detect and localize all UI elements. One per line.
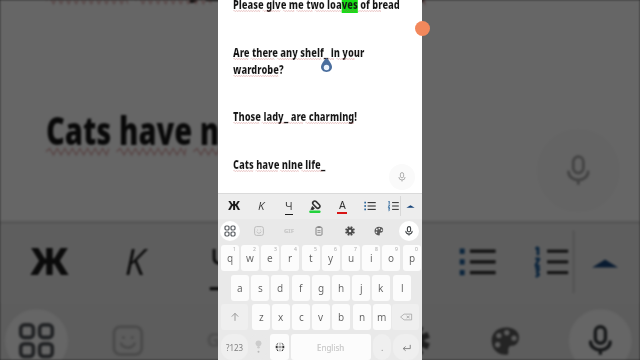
button[interactable]: o	[382, 245, 400, 271]
button[interactable]: Clipboard	[307, 219, 331, 243]
staticText: Please give me two loaves of bread	[233, 0, 400, 13]
button[interactable]: Clipboard	[279, 303, 355, 360]
button[interactable]: Themes	[468, 303, 544, 360]
button[interactable]: GIF	[277, 219, 301, 243]
staticText: 6	[334, 246, 337, 253]
staticText: t	[309, 251, 313, 265]
button[interactable]: k	[372, 275, 390, 301]
button[interactable]: x	[272, 304, 290, 330]
button[interactable]: Highlight	[303, 193, 327, 219]
button[interactable]: Apps	[218, 219, 242, 243]
button[interactable]: Stickers	[90, 303, 166, 360]
button[interactable]: Italic	[96, 221, 172, 303]
staticText: 4	[294, 246, 297, 253]
staticText: 2	[253, 246, 256, 253]
staticText: c	[299, 310, 304, 324]
button[interactable]: f	[292, 275, 310, 301]
button[interactable]: b	[332, 304, 350, 330]
staticText: n	[359, 310, 366, 324]
staticText: ?123	[226, 342, 244, 353]
button[interactable]: Language	[270, 334, 289, 360]
staticText: Cats have nine life_	[233, 156, 326, 173]
button[interactable]: j	[352, 275, 370, 301]
button[interactable]: q	[221, 245, 239, 271]
button[interactable]: t	[302, 245, 320, 271]
staticText: GIF	[284, 227, 294, 235]
button[interactable]: Symbols	[221, 334, 248, 360]
button[interactable]: p	[403, 245, 421, 271]
staticText: a	[237, 281, 243, 295]
staticText: 1	[233, 246, 236, 253]
staticText: K	[125, 237, 147, 287]
button[interactable]: Themes	[367, 219, 391, 243]
button[interactable]: Collapse toolbar	[572, 221, 635, 303]
button[interactable]: u	[342, 245, 360, 271]
button[interactable]: Stickers	[247, 219, 271, 243]
button[interactable]: Space	[291, 334, 371, 360]
staticText: v	[318, 310, 324, 324]
staticText: GIF	[207, 328, 238, 353]
button[interactable]: c	[292, 304, 310, 330]
staticText: p	[409, 251, 416, 265]
button[interactable]: Apps	[0, 303, 74, 360]
button[interactable]: Voice typing	[537, 130, 619, 211]
button[interactable]: d	[271, 275, 289, 301]
button[interactable]: Text colour	[351, 221, 427, 303]
button[interactable]: Settings	[338, 219, 362, 243]
button[interactable]: v	[312, 304, 330, 330]
button[interactable]: Numbered list	[515, 221, 591, 303]
staticText: Ж	[228, 198, 241, 214]
button[interactable]: s	[251, 275, 269, 301]
button[interactable]: Underline	[277, 193, 301, 219]
button[interactable]: Numbered list	[382, 193, 406, 219]
button[interactable]: e	[261, 245, 279, 271]
staticText: g	[318, 281, 325, 295]
button[interactable]: y	[322, 245, 340, 271]
button[interactable]: a	[231, 275, 249, 301]
button[interactable]: Profile	[415, 21, 430, 36]
button[interactable]: Voice input	[563, 303, 638, 360]
staticText: q	[227, 251, 234, 265]
button[interactable]: GIF	[185, 303, 260, 360]
staticText: s	[258, 281, 263, 295]
button[interactable]: w	[241, 245, 259, 271]
button[interactable]: Bulleted list	[358, 193, 382, 219]
button[interactable]: m	[373, 304, 391, 330]
button[interactable]: z	[252, 304, 270, 330]
staticText: b	[338, 310, 345, 324]
button[interactable]: Period	[373, 334, 391, 360]
staticText: 0	[415, 246, 418, 253]
staticText: Those lady_ are charming!	[233, 108, 357, 125]
button[interactable]: Bulleted list	[440, 221, 515, 303]
staticText: h	[338, 281, 345, 295]
button[interactable]: i	[362, 245, 380, 271]
button[interactable]: Voice input	[397, 219, 421, 243]
button[interactable]: Enter	[393, 334, 419, 360]
staticText: 7	[354, 246, 357, 253]
staticText: A	[339, 198, 346, 212]
button[interactable]: Text colour	[330, 193, 354, 219]
button[interactable]: g	[312, 275, 330, 301]
button[interactable]: h	[332, 275, 350, 301]
button[interactable]: Bold	[222, 193, 246, 219]
button[interactable]: Italic	[249, 193, 273, 219]
staticText: 5	[314, 246, 317, 253]
button[interactable]: Bold	[11, 221, 87, 303]
button[interactable]: r	[281, 245, 299, 271]
staticText: English	[317, 342, 345, 353]
button[interactable]: Shift	[221, 304, 248, 330]
staticText: u	[348, 251, 355, 265]
staticText: j	[360, 281, 363, 295]
staticText: Cats have nine life_	[46, 104, 339, 158]
button[interactable]: Collapse toolbar	[400, 193, 420, 219]
button[interactable]: Comma	[249, 334, 267, 360]
staticText: K	[258, 198, 265, 214]
button[interactable]: Highlight	[266, 221, 342, 303]
button[interactable]: l	[393, 275, 411, 301]
button[interactable]: Underline	[185, 221, 260, 303]
button[interactable]: n	[353, 304, 371, 330]
button[interactable]: Backspace	[392, 304, 419, 330]
staticText: m	[377, 310, 387, 324]
button[interactable]: Settings	[377, 303, 452, 360]
button[interactable]: Voice typing	[389, 164, 415, 190]
